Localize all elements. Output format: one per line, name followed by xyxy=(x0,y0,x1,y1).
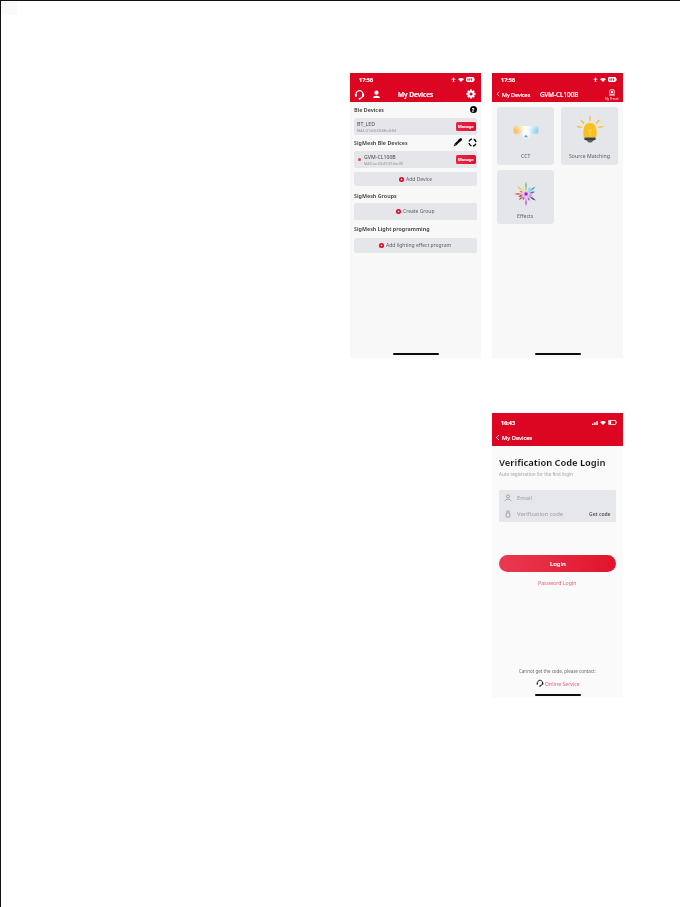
button[interactable]: My Devices xyxy=(493,433,533,442)
staticText: GVM-CL100B xyxy=(540,90,579,99)
button[interactable]: Edit xyxy=(453,138,462,147)
staticText: Source Matching xyxy=(569,152,610,159)
button[interactable]: Password Login xyxy=(538,579,577,586)
button[interactable]: Create Group xyxy=(354,203,477,220)
staticText: Password Login xyxy=(538,579,577,586)
staticText: SigMesh Groups xyxy=(354,192,397,199)
staticText: MAC:ac:23:41:91:be:39 xyxy=(364,161,403,166)
button[interactable]: Profile xyxy=(371,89,382,100)
button[interactable]: Refresh xyxy=(468,138,477,147)
staticText: GVM-CL100B xyxy=(364,153,396,160)
staticText: Login xyxy=(550,560,566,568)
staticText: SigMesh Light programming xyxy=(354,225,430,232)
button[interactable]: CCT xyxy=(497,107,554,165)
staticText: BT_LED xyxy=(357,120,376,127)
button[interactable]: GVM-CL100B xyxy=(354,151,477,168)
button[interactable]: Help xyxy=(470,106,477,113)
button[interactable]: Login xyxy=(499,555,616,572)
staticText: My Devices xyxy=(502,91,531,98)
button[interactable]: Source Matching xyxy=(561,107,618,165)
staticText: CCT xyxy=(521,152,531,159)
button[interactable]: Add lighting effect program xyxy=(354,238,477,253)
button[interactable]: Online Service xyxy=(536,679,580,687)
staticText: Auto registration for the first login xyxy=(499,471,573,477)
button[interactable]: Customer service xyxy=(354,89,365,100)
staticText: Effects xyxy=(517,212,534,219)
staticText: Get code xyxy=(589,511,611,518)
staticText: ? xyxy=(472,107,475,113)
button[interactable]: Add Device xyxy=(354,172,477,186)
button[interactable]: Settings xyxy=(466,89,476,99)
staticText: Create Group xyxy=(403,208,435,215)
staticText: 16:43 xyxy=(501,419,516,426)
button[interactable]: Get code xyxy=(589,511,611,518)
staticText: Email xyxy=(517,494,533,502)
staticText: Manage xyxy=(458,124,474,130)
staticText: My Preset xyxy=(605,97,619,101)
staticText: My Devices xyxy=(502,434,533,442)
staticText: 17:56 xyxy=(359,76,374,83)
staticText: SigMesh Ble Devices xyxy=(354,139,408,146)
staticText: 17:56 xyxy=(501,76,516,83)
staticText: Add Device xyxy=(406,176,433,183)
button[interactable]: My Devices xyxy=(494,90,531,98)
button[interactable]: My Preset xyxy=(605,89,619,101)
button[interactable]: Email xyxy=(499,490,616,506)
staticText: My Devices xyxy=(398,90,434,99)
staticText: Online Service xyxy=(545,680,580,687)
staticText: Manage xyxy=(458,157,474,163)
staticText: Verification Code Login xyxy=(499,456,606,469)
staticText: Cannot get the code, please contact: xyxy=(519,668,596,674)
button[interactable]: Manage xyxy=(456,122,476,131)
staticText: Verification code xyxy=(517,510,564,518)
button[interactable]: BT_LED xyxy=(354,118,477,135)
button[interactable]: Manage xyxy=(456,155,476,164)
button[interactable]: Effects xyxy=(497,170,554,224)
staticText: Add lighting effect program xyxy=(386,242,452,249)
staticText: MAC:21:b9:39:68:c0:84 xyxy=(357,128,397,133)
staticText: Ble Devices xyxy=(354,106,384,113)
